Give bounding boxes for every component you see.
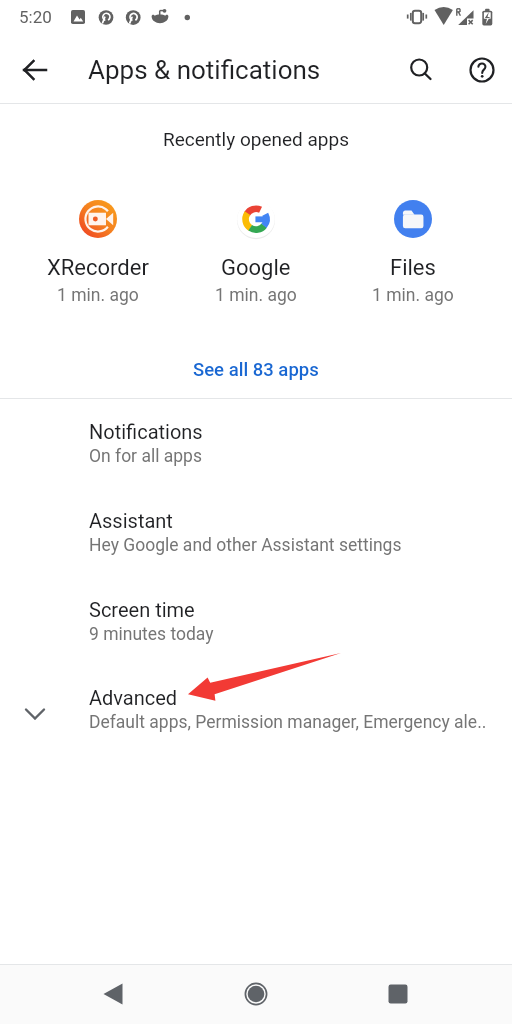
button[interactable]: Google (181, 200, 331, 310)
staticText: 5:20 (19, 7, 52, 27)
button[interactable]: Advanced (0, 672, 512, 761)
button[interactable]: Help (458, 46, 506, 94)
staticText: 1 min. ago (57, 285, 139, 306)
button[interactable]: Assistant (0, 495, 512, 584)
staticText: 1 min. ago (372, 285, 454, 306)
staticText: Notifications (89, 420, 203, 443)
button[interactable]: Back (89, 970, 137, 1018)
button[interactable]: Recent apps (374, 970, 422, 1018)
staticText: See all 83 apps (193, 359, 319, 381)
staticText: 1 min. ago (215, 285, 297, 306)
button[interactable]: Navigate up (11, 46, 59, 94)
button[interactable]: See all 83 apps (176, 352, 336, 388)
button[interactable]: XRecorder (23, 200, 173, 310)
staticText: On for all apps (89, 446, 202, 467)
button[interactable]: Search (397, 46, 445, 94)
button[interactable]: Home (232, 970, 280, 1018)
staticText: Recently opened apps (0, 128, 512, 150)
staticText: Assistant (89, 509, 173, 532)
staticText: 9 minutes today (89, 624, 214, 645)
staticText: Default apps, Permission manager, Emerge… (89, 712, 487, 733)
staticText: Google (221, 255, 291, 281)
staticText: XRecorder (47, 255, 149, 281)
staticText: Screen time (89, 598, 195, 621)
staticText: Files (390, 255, 436, 281)
staticText: Apps & notifications (88, 55, 321, 85)
staticText: Advanced (89, 686, 178, 709)
button[interactable]: Files (338, 200, 488, 310)
staticText: Hey Google and other Assistant settings (89, 535, 402, 556)
button[interactable]: Notifications (0, 406, 512, 495)
button[interactable]: Screen time (0, 584, 512, 673)
